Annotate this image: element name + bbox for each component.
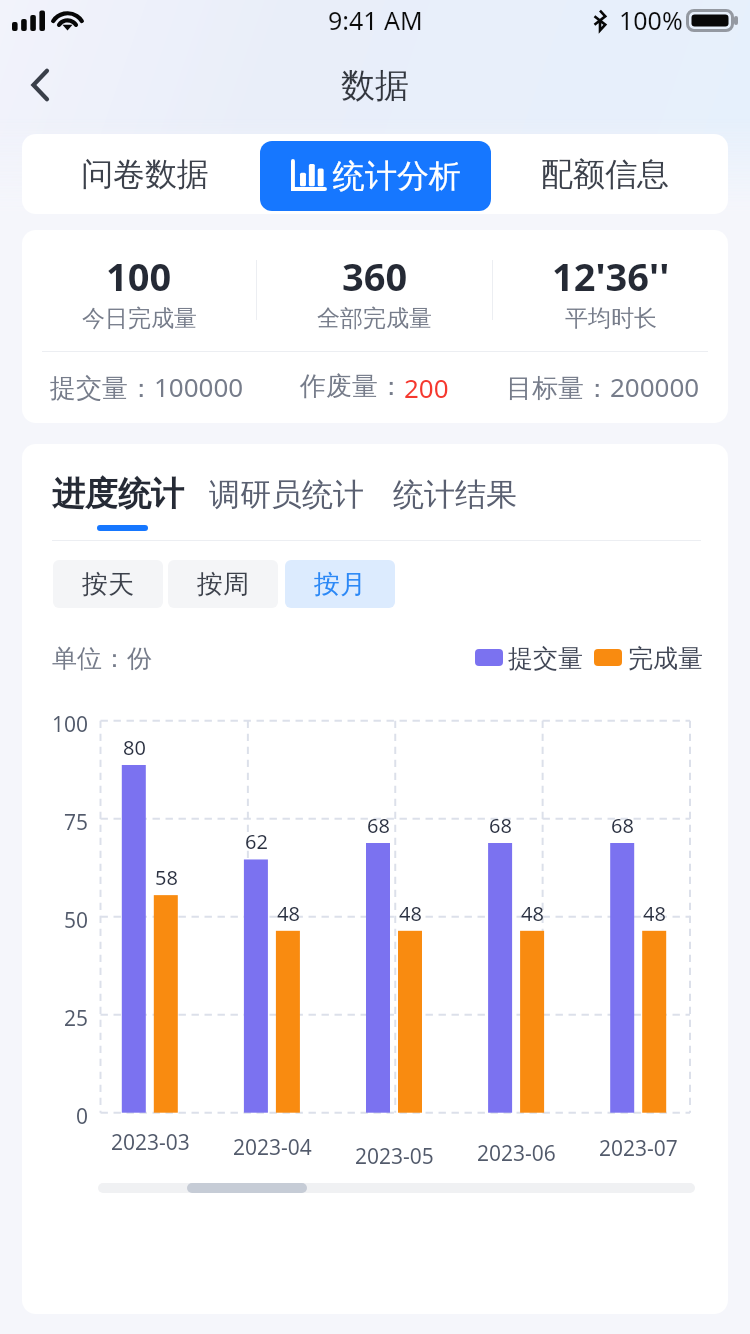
staticText: 48 xyxy=(277,900,300,927)
staticText: 80 xyxy=(123,734,146,761)
staticText: 48 xyxy=(521,900,544,927)
staticText: 68 xyxy=(489,812,512,839)
staticText: 统计结果 xyxy=(393,475,517,514)
staticText: 75 xyxy=(64,808,89,837)
staticText: 68 xyxy=(367,812,390,839)
staticText: 100% xyxy=(619,3,683,33)
staticText: 48 xyxy=(399,900,422,927)
staticText: 目标量：200000 xyxy=(506,369,700,405)
staticText: 今日完成量 xyxy=(82,304,197,333)
staticText: 50 xyxy=(64,906,89,935)
staticText: 12'36'' xyxy=(552,250,670,302)
button[interactable]: 进度统计 xyxy=(52,472,184,516)
staticText: 25 xyxy=(64,1004,89,1033)
staticText: 提交量：100000 xyxy=(50,369,244,405)
staticText: 2023-04 xyxy=(233,1133,312,1162)
staticText: 0 xyxy=(76,1102,89,1131)
staticText: 按月 xyxy=(314,568,366,601)
staticText: 62 xyxy=(245,828,268,855)
button[interactable]: 统计结果 xyxy=(391,472,519,516)
staticText: 按天 xyxy=(82,568,134,601)
staticText: 平均时长 xyxy=(565,304,657,333)
button[interactable]: 问卷数据 xyxy=(30,137,260,211)
staticText: 48 xyxy=(643,900,666,927)
staticText: 提交量 xyxy=(508,643,583,673)
staticText: 58 xyxy=(155,864,178,891)
button[interactable]: 配额信息 xyxy=(490,137,720,211)
staticText: 100 xyxy=(106,250,172,302)
staticText: 100 xyxy=(52,710,89,739)
staticText: 配额信息 xyxy=(541,154,669,194)
button[interactable]: 按月 xyxy=(285,560,395,608)
staticText: 调研员统计 xyxy=(209,475,364,514)
staticText: 作废量： xyxy=(300,370,404,403)
staticText: 全部完成量 xyxy=(317,304,432,333)
staticText: 2023-07 xyxy=(599,1134,678,1163)
button[interactable]: 统计分析 xyxy=(260,141,491,211)
button[interactable]: 按天 xyxy=(53,560,163,608)
staticText: 完成量 xyxy=(628,643,703,673)
staticText: 数据 xyxy=(341,64,409,106)
staticText: 68 xyxy=(611,812,634,839)
staticText: 问卷数据 xyxy=(81,154,209,194)
staticText: 按周 xyxy=(197,568,249,601)
staticText: 2023-06 xyxy=(477,1139,556,1168)
staticText: 2023-05 xyxy=(355,1142,434,1171)
staticText: 统计分析 xyxy=(333,156,461,196)
staticText: 9:41 AM xyxy=(328,3,423,33)
staticText: 200 xyxy=(404,370,449,405)
staticText: 单位：份 xyxy=(52,643,152,673)
staticText: 2023-03 xyxy=(111,1128,190,1157)
button[interactable]: Back xyxy=(12,57,68,113)
staticText: 进度统计 xyxy=(52,473,184,515)
button[interactable]: 按周 xyxy=(168,560,278,608)
button[interactable]: 调研员统计 xyxy=(208,472,364,516)
staticText: 360 xyxy=(342,250,408,302)
